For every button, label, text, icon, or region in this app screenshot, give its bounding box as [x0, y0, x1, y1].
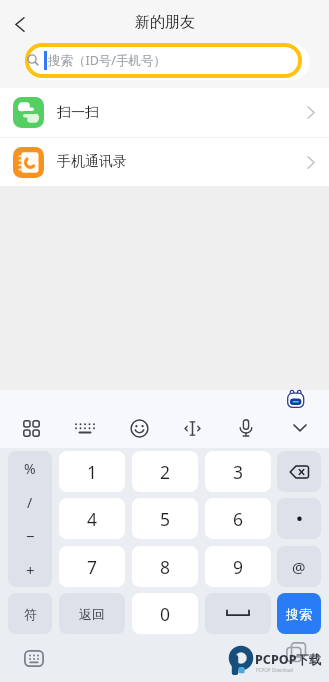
- button[interactable]: [122, 411, 156, 445]
- staticText: 新的朋友: [135, 13, 195, 32]
- staticText: 6: [233, 507, 244, 531]
- button[interactable]: 5: [132, 498, 198, 539]
- staticText: /: [27, 493, 33, 512]
- button[interactable]: 搜索: [277, 593, 321, 634]
- button[interactable]: [283, 411, 317, 445]
- button[interactable]: 手机通讯录: [0, 138, 329, 186]
- button[interactable]: [229, 411, 263, 445]
- staticText: 返回: [79, 606, 105, 622]
- button[interactable]: 4: [59, 498, 125, 539]
- staticText: @: [292, 557, 306, 577]
- button[interactable]: [68, 411, 102, 445]
- staticText: 手机通讯录: [57, 153, 127, 171]
- staticText: PCPOP下载: [255, 651, 322, 668]
- staticText: 9: [233, 555, 244, 579]
- button[interactable]: 0: [132, 593, 198, 634]
- staticText: 搜索: [286, 606, 312, 622]
- button[interactable]: 2: [132, 451, 198, 492]
- button[interactable]: [175, 411, 209, 445]
- button[interactable]: 9: [205, 546, 271, 587]
- button[interactable]: [16, 644, 52, 672]
- button[interactable]: 返回: [59, 593, 125, 634]
- button[interactable]: 扫一扫: [0, 88, 329, 137]
- button[interactable]: 6: [205, 498, 271, 539]
- button[interactable]: [277, 451, 321, 492]
- button[interactable]: [277, 498, 321, 539]
- staticText: %: [24, 459, 36, 478]
- staticText: PCPOP Download: [256, 667, 294, 673]
- staticText: 搜索（ID号/手机号）: [48, 52, 167, 69]
- staticText: 符: [24, 606, 37, 622]
- button[interactable]: 1: [59, 451, 125, 492]
- button[interactable]: 8: [132, 546, 198, 587]
- staticText: 扫一扫: [57, 104, 99, 122]
- staticText: 1: [87, 460, 98, 484]
- staticText: +: [26, 560, 35, 580]
- button[interactable]: @: [277, 546, 321, 587]
- staticText: 3: [233, 460, 244, 484]
- staticText: 5: [160, 507, 171, 531]
- button[interactable]: 7: [59, 546, 125, 587]
- button[interactable]: %: [8, 451, 52, 587]
- staticText: 2: [160, 460, 171, 484]
- staticText: 4: [87, 507, 98, 531]
- staticText: 0: [160, 602, 171, 626]
- button[interactable]: 3: [205, 451, 271, 492]
- staticText: 8: [160, 555, 171, 579]
- staticText: −: [26, 526, 35, 546]
- button[interactable]: 搜索（ID号/手机号）: [0, 40, 329, 88]
- button[interactable]: [14, 411, 48, 445]
- button[interactable]: [8, 12, 32, 36]
- button[interactable]: [205, 593, 271, 634]
- staticText: 7: [87, 555, 98, 579]
- button[interactable]: 符: [8, 593, 52, 634]
